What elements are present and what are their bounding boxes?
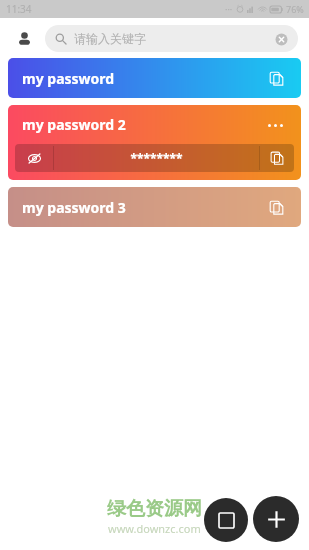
button[interactable]: Copy password	[265, 196, 287, 218]
button[interactable]: Copy password	[265, 67, 287, 89]
staticText: 请输入关键字	[74, 31, 146, 46]
staticText: ********	[130, 150, 183, 166]
button[interactable]: my password 2	[8, 105, 301, 180]
staticText: www.downzc.com	[108, 521, 201, 536]
button[interactable]: Show password	[15, 144, 53, 172]
button[interactable]: 请输入关键字	[45, 25, 298, 52]
button[interactable]: my password 3	[8, 187, 301, 227]
button[interactable]: More options	[263, 115, 287, 135]
button[interactable]: Add password	[253, 496, 299, 542]
button[interactable]: Copy password	[260, 144, 294, 172]
staticText: 绿色资源网	[107, 497, 202, 521]
button[interactable]: my password	[8, 58, 301, 98]
staticText: 11:34	[6, 2, 32, 16]
staticText: 76%	[286, 3, 304, 15]
button[interactable]: Account	[11, 25, 37, 51]
staticText: my password 2	[22, 115, 126, 134]
staticText: my password 3	[22, 198, 126, 217]
button[interactable]: Clear	[274, 32, 288, 46]
staticText: ···	[225, 3, 233, 15]
button[interactable]: Select	[204, 498, 248, 542]
staticText: my password	[22, 69, 115, 88]
